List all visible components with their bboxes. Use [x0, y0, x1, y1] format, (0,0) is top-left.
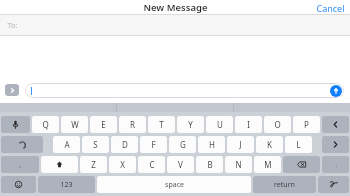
button[interactable]: A [53, 136, 80, 153]
button[interactable]: Next [322, 136, 349, 153]
staticText: V [178, 159, 183, 170]
button[interactable]: B [196, 156, 223, 173]
button[interactable]: U [206, 116, 233, 133]
staticText: M [264, 159, 272, 170]
staticText: P [304, 119, 309, 130]
button[interactable]: K [256, 136, 283, 153]
button[interactable]: space [97, 176, 251, 193]
button[interactable]: Q [32, 116, 59, 133]
button[interactable]: Send [25, 83, 344, 98]
staticText: . [335, 160, 337, 169]
staticText: T [159, 119, 164, 130]
button[interactable]: Delete [283, 156, 320, 173]
staticText: X [120, 159, 125, 170]
staticText: To: [7, 20, 18, 30]
staticText: 123 [60, 180, 73, 190]
button[interactable]: C [138, 156, 165, 173]
button[interactable]: E [90, 116, 117, 133]
staticText: B [207, 159, 213, 170]
button[interactable]: X [109, 156, 136, 173]
staticText: K [267, 139, 272, 150]
staticText: N [235, 159, 242, 170]
button[interactable]: T [148, 116, 175, 133]
button[interactable]: S [82, 136, 109, 153]
button[interactable]: P [293, 116, 320, 133]
staticText: U [217, 119, 223, 130]
button[interactable]: Z [80, 156, 107, 173]
button[interactable]: N [225, 156, 252, 173]
button[interactable]: G [169, 136, 196, 153]
button[interactable]: J [227, 136, 254, 153]
staticText: A [64, 139, 70, 150]
button[interactable]: Shift [41, 156, 78, 173]
staticText: , [19, 160, 21, 169]
button[interactable]: L [285, 136, 312, 153]
button[interactable]: Previous [322, 116, 349, 133]
staticText: H [209, 139, 215, 150]
button[interactable]: return [253, 176, 316, 193]
staticText: E [101, 119, 106, 130]
staticText: W [71, 119, 79, 130]
button[interactable]: W [61, 116, 88, 133]
button[interactable]: 123 [38, 176, 95, 193]
staticText: I [247, 119, 250, 130]
button[interactable]: O [264, 116, 291, 133]
staticText: R [130, 119, 135, 130]
button[interactable]: Handwriting [318, 176, 349, 193]
button[interactable]: F [140, 136, 167, 153]
button[interactable]: R [119, 116, 146, 133]
staticText: O [274, 119, 281, 130]
button[interactable]: M [254, 156, 281, 173]
staticText: Z [91, 159, 96, 170]
button[interactable]: Send [330, 85, 342, 97]
button[interactable]: Undo [1, 136, 43, 153]
button[interactable]: V [167, 156, 194, 173]
staticText: F [151, 139, 156, 150]
button[interactable]: I [235, 116, 262, 133]
button[interactable]: H [198, 136, 225, 153]
staticText: space [165, 180, 184, 190]
staticText: L [296, 139, 301, 150]
staticText: S [93, 139, 98, 150]
staticText: C [149, 159, 155, 170]
button[interactable]: Y [177, 116, 204, 133]
button[interactable]: Dictate [1, 116, 30, 133]
button[interactable]: Apps [5, 84, 19, 96]
button[interactable]: D [111, 136, 138, 153]
staticText: D [122, 139, 128, 150]
button[interactable]: Emoji [1, 176, 36, 193]
staticText: New Message [143, 1, 208, 14]
staticText: Q [42, 119, 49, 130]
staticText: Cancel [316, 2, 345, 12]
staticText: J [239, 139, 242, 150]
button[interactable]: . [322, 156, 349, 173]
staticText: G [180, 139, 186, 150]
staticText: return [274, 180, 295, 190]
staticText: Y [188, 119, 193, 130]
button[interactable]: Cancel [311, 0, 350, 14]
